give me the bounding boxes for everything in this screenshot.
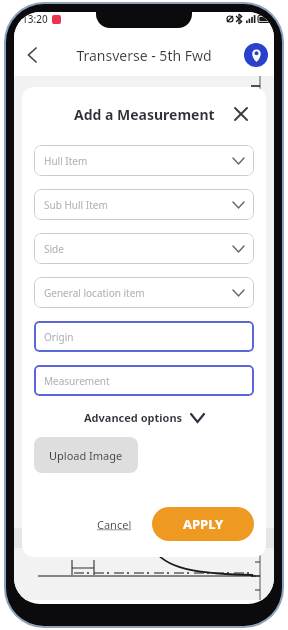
staticText: Side: [44, 242, 64, 256]
staticText: Advanced options: [84, 410, 183, 425]
staticText: Cancel: [97, 517, 132, 532]
staticText: Sub Hull Item: [44, 198, 108, 212]
button[interactable]: APPLY: [152, 507, 254, 541]
staticText: Upload Image: [49, 448, 123, 463]
button[interactable]: Location: [244, 43, 268, 67]
staticText: 13:20: [22, 12, 48, 26]
staticText: APPLY: [183, 515, 224, 533]
staticText: Hull Item: [44, 154, 88, 168]
button[interactable]: Measurement: [34, 365, 254, 396]
staticText: Transverse - 5th Fwd: [76, 46, 212, 65]
staticText: Measurement: [44, 374, 110, 388]
button[interactable]: Back: [16, 38, 50, 72]
staticText: General location item: [44, 286, 145, 300]
button[interactable]: Advanced options: [84, 410, 204, 425]
button[interactable]: Upload Image: [34, 437, 138, 473]
staticText: Add a Measurement: [74, 105, 215, 124]
button[interactable]: Hull Item: [34, 145, 254, 176]
button[interactable]: Sub Hull Item: [34, 189, 254, 220]
button[interactable]: General location item: [34, 277, 254, 308]
button[interactable]: Origin: [34, 321, 254, 352]
button[interactable]: Side: [34, 233, 254, 264]
staticText: Origin: [44, 330, 74, 344]
button[interactable]: Cancel: [89, 511, 140, 538]
button[interactable]: Close: [228, 101, 254, 127]
